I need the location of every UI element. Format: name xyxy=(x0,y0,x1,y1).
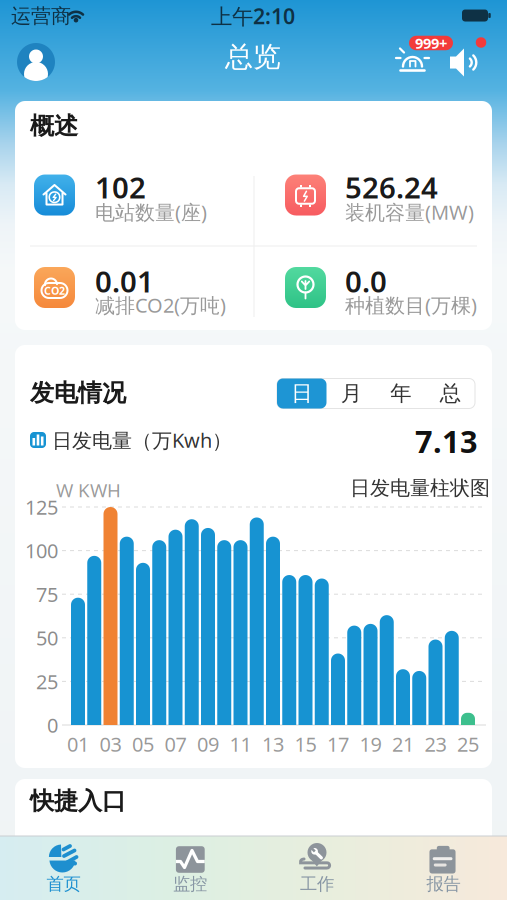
staticText: 01 xyxy=(67,731,89,757)
staticText: 0.01 xyxy=(95,261,154,300)
staticText: 工作 xyxy=(300,873,334,895)
button[interactable]: 告警消息 xyxy=(394,31,458,77)
staticText: 种植数目(万棵) xyxy=(345,292,477,318)
staticText: 发电情况 xyxy=(30,378,126,408)
staticText: 17 xyxy=(327,731,349,757)
staticText: 电站数量(座) xyxy=(95,199,207,225)
staticText: 上午2:10 xyxy=(211,2,295,30)
button[interactable]: 总 xyxy=(425,378,475,408)
staticText: 月 xyxy=(341,380,362,407)
staticText: 总览 xyxy=(225,40,281,74)
staticText: 100 xyxy=(25,537,58,564)
staticText: 23 xyxy=(424,731,446,757)
staticText: 75 xyxy=(36,581,58,607)
button[interactable]: 日 xyxy=(277,378,326,408)
staticText: 0.0 xyxy=(345,261,387,300)
staticText: CO2 xyxy=(44,283,65,298)
staticText: 25 xyxy=(36,668,58,695)
button[interactable]: 首页 xyxy=(5,839,121,899)
staticText: 年 xyxy=(390,380,411,407)
staticText: 运营商 xyxy=(11,4,71,28)
staticText: 日发电量（万Kwh） xyxy=(52,427,232,453)
staticText: 21 xyxy=(392,731,414,757)
staticText: 首页 xyxy=(46,873,80,895)
staticText: 监控 xyxy=(173,873,207,895)
button[interactable]: 报告 xyxy=(386,839,502,899)
staticText: 526.24 xyxy=(345,167,438,206)
staticText: 装机容量(MW) xyxy=(345,199,474,225)
staticText: 概述 xyxy=(30,111,78,141)
staticText: 09 xyxy=(197,731,219,757)
staticText: 03 xyxy=(99,731,121,757)
button[interactable]: 个人中心 xyxy=(17,43,55,81)
staticText: 日 xyxy=(291,380,312,407)
button[interactable]: 通知公告 xyxy=(446,38,490,82)
staticText: 25 xyxy=(457,731,479,757)
button[interactable]: 监控 xyxy=(132,839,248,899)
staticText: 125 xyxy=(25,494,58,520)
staticText: 日发电量柱状图 xyxy=(350,476,490,500)
staticText: 07 xyxy=(164,731,186,757)
staticText: 15 xyxy=(294,731,316,757)
staticText: 7.13 xyxy=(415,421,478,461)
staticText: 总 xyxy=(440,380,461,407)
staticText: 快捷入口 xyxy=(30,786,126,816)
button[interactable]: 月 xyxy=(326,378,376,408)
staticText: 0 xyxy=(47,712,58,738)
staticText: 05 xyxy=(132,731,154,757)
button[interactable]: 年 xyxy=(376,378,425,408)
staticText: 999+ xyxy=(415,33,447,53)
staticText: 减排CO2(万吨) xyxy=(95,292,226,318)
staticText: 50 xyxy=(36,624,58,651)
button[interactable]: 工作 xyxy=(259,839,375,899)
staticText: 102 xyxy=(95,167,146,206)
staticText: 13 xyxy=(262,731,284,757)
staticText: 19 xyxy=(359,731,381,757)
staticText: 11 xyxy=(229,731,251,757)
staticText: 报告 xyxy=(427,873,461,895)
staticText: W KWH xyxy=(56,478,121,502)
